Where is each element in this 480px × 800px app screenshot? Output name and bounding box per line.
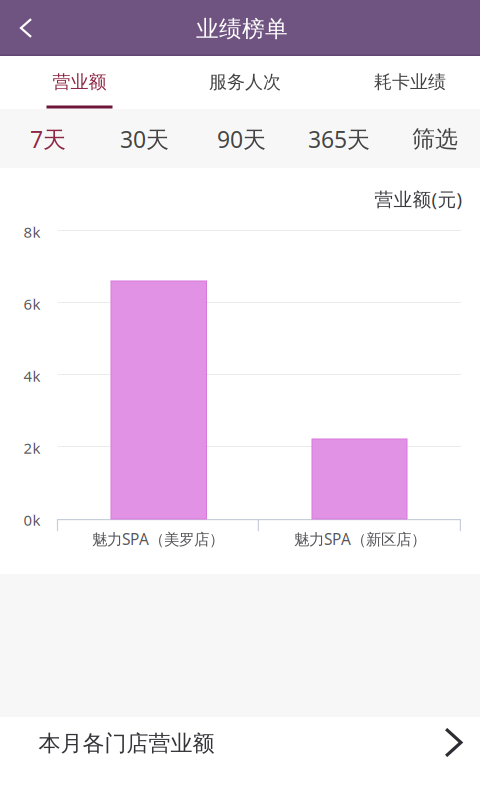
staticText: 6k <box>23 294 40 314</box>
button[interactable]: 365天 <box>0 109 480 168</box>
staticText: 4k <box>23 366 40 386</box>
button[interactable]: 7天 <box>0 109 480 168</box>
button[interactable]: 30天 <box>0 109 480 168</box>
staticText: 魅力SPA（美罗店） <box>92 528 224 550</box>
staticText: 365天 <box>308 123 370 155</box>
staticText: 7天 <box>30 123 66 155</box>
button[interactable]: Back <box>0 0 52 56</box>
staticText: 8k <box>23 222 40 242</box>
staticText: 本月各门店营业额 <box>38 730 214 757</box>
staticText: 业绩榜单 <box>196 15 288 43</box>
staticText: 30天 <box>120 123 169 155</box>
staticText: 90天 <box>217 123 266 155</box>
button[interactable]: 服务人次 <box>0 56 480 109</box>
button[interactable]: 本月各门店营业额 <box>0 717 480 800</box>
staticText: 魅力SPA（新区店） <box>294 528 426 550</box>
button[interactable]: 90天 <box>0 109 480 168</box>
button[interactable]: 耗卡业绩 <box>0 56 480 109</box>
staticText: 服务人次 <box>209 71 281 93</box>
staticText: 营业额(元) <box>374 186 462 212</box>
staticText: 营业额 <box>52 71 106 93</box>
button[interactable]: 营业额 <box>0 56 480 109</box>
staticText: 耗卡业绩 <box>374 71 446 93</box>
staticText: 0k <box>23 510 40 530</box>
staticText: 筛选 <box>412 125 458 153</box>
staticText: 2k <box>23 438 40 458</box>
button[interactable]: 筛选 <box>0 109 480 168</box>
